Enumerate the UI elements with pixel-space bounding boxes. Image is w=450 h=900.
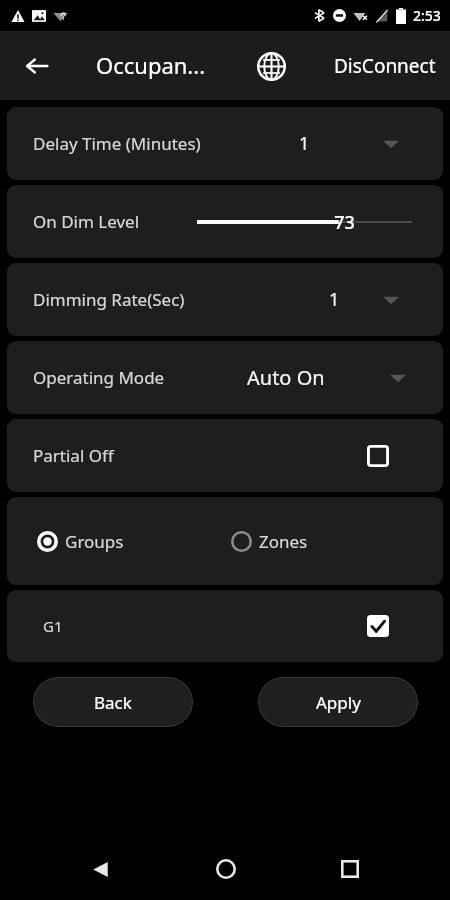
button[interactable]: Home <box>204 847 248 891</box>
button[interactable]: Back <box>16 45 58 87</box>
staticText: Auto On <box>247 364 325 391</box>
staticText: 1 <box>299 131 310 156</box>
staticText: 1 <box>329 287 340 312</box>
staticText: Back <box>94 691 132 714</box>
staticText: Zones <box>259 530 308 553</box>
staticText: 2:53 <box>413 6 441 25</box>
button[interactable]: Apply <box>258 677 418 727</box>
button[interactable]: DisConnect <box>320 43 450 89</box>
staticText: 73 <box>334 210 355 235</box>
staticText: G1 <box>43 616 63 636</box>
button[interactable]: Back <box>33 677 193 727</box>
button[interactable]: Back <box>78 847 122 891</box>
button[interactable]: Groups <box>37 530 124 553</box>
button[interactable]: Language <box>250 45 292 87</box>
button[interactable]: Dimming Rate(Sec) <box>7 263 443 336</box>
button[interactable]: G1 checkbox <box>357 605 399 647</box>
staticText: Apply <box>316 691 361 714</box>
staticText: Dimming Rate(Sec) <box>33 288 185 311</box>
staticText: Groups <box>65 530 124 553</box>
staticText: Partial Off <box>33 444 114 467</box>
staticText: Occupan... <box>96 50 206 80</box>
button[interactable]: Partial Off checkbox <box>357 435 399 477</box>
staticText: Delay Time (Minutes) <box>33 132 201 155</box>
button[interactable]: On Dim Level slider <box>197 205 412 239</box>
staticText: DisConnect <box>334 53 436 79</box>
staticText: Operating Mode <box>33 366 165 389</box>
button[interactable]: Zones <box>231 530 308 553</box>
button[interactable]: Delay Time (Minutes) <box>7 107 443 180</box>
button[interactable]: Recent apps <box>328 847 372 891</box>
button[interactable]: Operating Mode <box>7 341 443 414</box>
staticText: On Dim Level <box>33 210 140 233</box>
